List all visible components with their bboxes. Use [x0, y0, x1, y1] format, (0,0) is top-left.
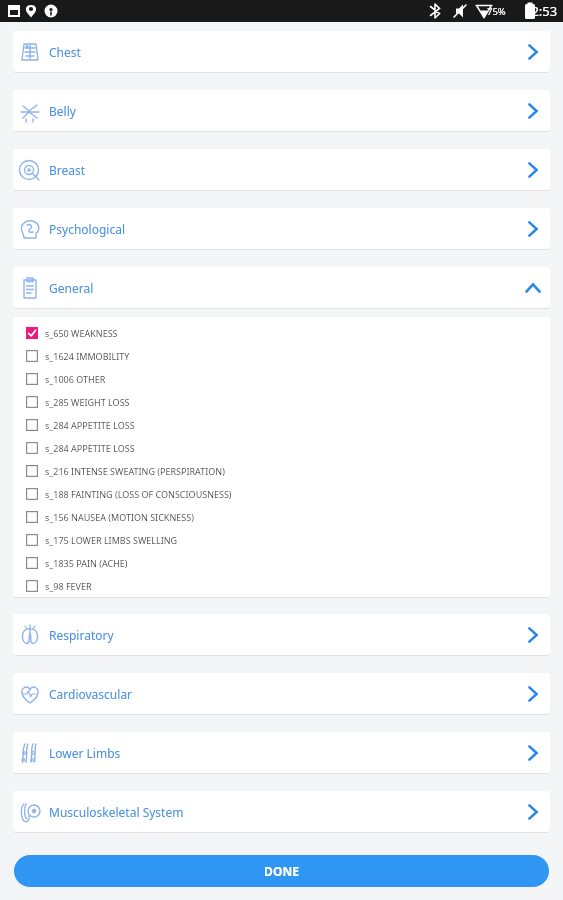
- button[interactable]: s_650 WEAKNESS: [13, 321, 550, 344]
- button[interactable]: s_1835 PAIN (ACHE): [13, 551, 550, 574]
- button[interactable]: Musculoskeletal System: [13, 791, 550, 832]
- staticText: s_284 APPETITE LOSS: [45, 419, 135, 431]
- button[interactable]: Cardiovascular: [13, 673, 550, 714]
- staticText: Cardiovascular: [49, 686, 133, 702]
- button[interactable]: s_1006 OTHER: [13, 367, 550, 390]
- button[interactable]: s_188 FAINTING (LOSS OF CONSCIOUSNESS): [13, 482, 550, 505]
- button[interactable]: General: [13, 267, 550, 308]
- button[interactable]: Lower Limbs: [13, 732, 550, 773]
- staticText: Breast: [49, 162, 86, 178]
- staticText: s_98 FEVER: [45, 580, 92, 592]
- staticText: s_1835 PAIN (ACHE): [45, 557, 128, 569]
- button[interactable]: DONE: [14, 855, 549, 887]
- staticText: s_284 APPETITE LOSS: [45, 442, 135, 454]
- button[interactable]: s_285 WEIGHT LOSS: [13, 390, 550, 413]
- staticText: Musculoskeletal System: [49, 804, 184, 820]
- staticText: s_1624 IMMOBILITY: [45, 350, 130, 362]
- button[interactable]: Respiratory: [13, 614, 550, 655]
- button[interactable]: Psychological: [13, 208, 550, 249]
- button[interactable]: s_156 NAUSEA (MOTION SICKNESS): [13, 505, 550, 528]
- button[interactable]: s_284 APPETITE LOSS: [13, 413, 550, 436]
- staticText: Belly: [49, 103, 76, 119]
- staticText: Respiratory: [49, 627, 114, 643]
- button[interactable]: s_284 APPETITE LOSS: [13, 436, 550, 459]
- staticText: 75%: [487, 5, 506, 18]
- staticText: s_1006 OTHER: [45, 373, 106, 385]
- staticText: s_156 NAUSEA (MOTION SICKNESS): [45, 511, 194, 523]
- button[interactable]: s_175 LOWER LIMBS SWELLING: [13, 528, 550, 551]
- button[interactable]: Chest: [13, 31, 550, 72]
- staticText: s_285 WEIGHT LOSS: [45, 396, 130, 408]
- staticText: s_650 WEAKNESS: [45, 327, 118, 339]
- staticText: Lower Limbs: [49, 745, 121, 761]
- staticText: Psychological: [49, 221, 125, 237]
- staticText: General: [49, 280, 94, 296]
- button[interactable]: Breast: [13, 149, 550, 190]
- staticText: Chest: [49, 44, 81, 60]
- button[interactable]: s_1624 IMMOBILITY: [13, 344, 550, 367]
- button[interactable]: s_216 INTENSE SWEATING (PERSPIRATION): [13, 459, 550, 482]
- staticText: s_188 FAINTING (LOSS OF CONSCIOUSNESS): [45, 488, 232, 500]
- button[interactable]: Belly: [13, 90, 550, 131]
- staticText: 12:53: [524, 2, 558, 20]
- staticText: s_216 INTENSE SWEATING (PERSPIRATION): [45, 465, 225, 477]
- staticText: DONE: [264, 863, 299, 879]
- button[interactable]: s_98 FEVER: [13, 574, 550, 597]
- staticText: s_175 LOWER LIMBS SWELLING: [45, 534, 178, 546]
